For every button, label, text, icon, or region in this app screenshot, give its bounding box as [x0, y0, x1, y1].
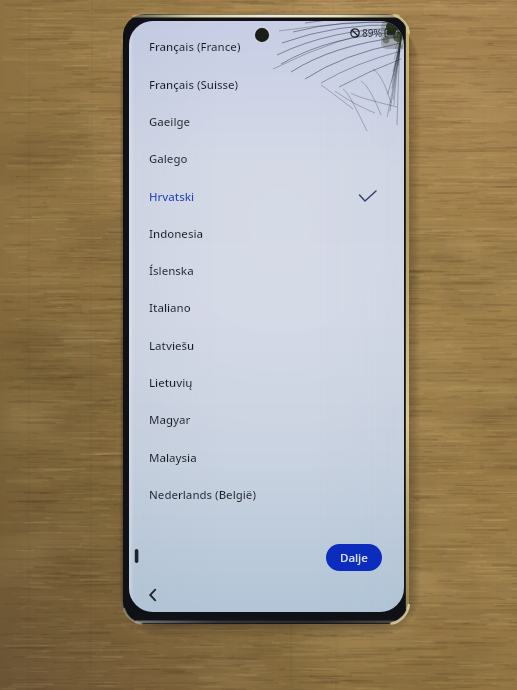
staticText: Gaeilge: [149, 114, 191, 130]
button[interactable]: Malaysia: [129, 439, 404, 476]
staticText: Lietuvių: [149, 375, 193, 391]
staticText: Français (Suisse): [149, 77, 239, 93]
staticText: Íslenska: [149, 263, 194, 279]
staticText: Latviešu: [149, 338, 195, 354]
staticText: 89%: [362, 26, 382, 39]
staticText: Galego: [149, 151, 188, 167]
button[interactable]: Latviešu: [129, 327, 404, 364]
button[interactable]: Hrvatski: [129, 178, 404, 215]
staticText: Nederlands (België): [149, 487, 256, 503]
button[interactable]: Français (France): [129, 28, 404, 65]
button[interactable]: Lietuvių: [129, 364, 404, 401]
staticText: Hrvatski: [149, 189, 195, 205]
staticText: Indonesia: [149, 226, 204, 242]
button[interactable]: Íslenska: [129, 252, 404, 289]
staticText: Italiano: [149, 300, 191, 316]
button[interactable]: Galego: [129, 140, 404, 177]
staticText: Français (France): [149, 39, 241, 55]
button[interactable]: Italiano: [129, 289, 404, 326]
staticText: Magyar: [149, 412, 191, 428]
button[interactable]: Dalje: [326, 544, 382, 571]
staticText: Dalje: [340, 550, 368, 566]
button[interactable]: Gaeilge: [129, 103, 404, 140]
button[interactable]: Magyar: [129, 401, 404, 438]
staticText: Malaysia: [149, 450, 197, 466]
button[interactable]: Indonesia: [129, 215, 404, 252]
button[interactable]: Nederlands (België): [129, 476, 404, 513]
button[interactable]: Back: [141, 583, 165, 607]
button[interactable]: Français (Suisse): [129, 66, 404, 103]
